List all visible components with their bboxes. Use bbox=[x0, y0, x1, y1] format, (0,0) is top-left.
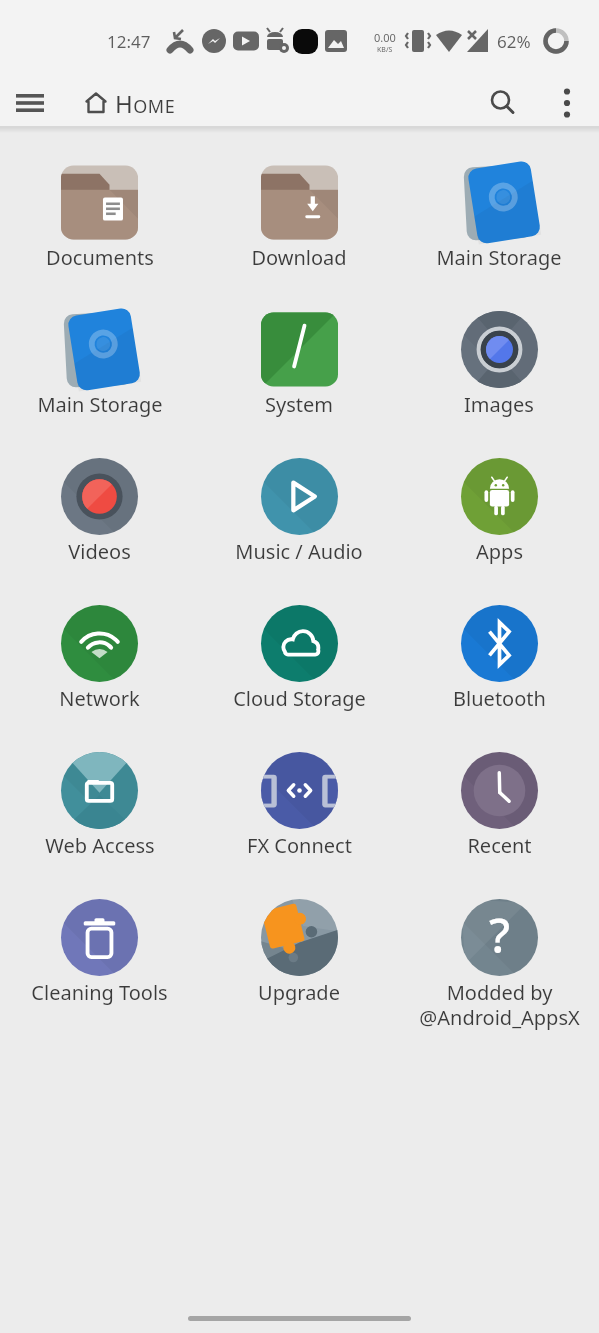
staticText: 0.00 bbox=[374, 30, 396, 45]
staticText: Music / Audio bbox=[235, 538, 363, 565]
staticText: Cleaning Tools bbox=[31, 979, 168, 1006]
staticText: Web Access bbox=[45, 832, 155, 859]
button[interactable]: Music / Audio bbox=[199, 458, 399, 565]
staticText: ? bbox=[489, 903, 511, 967]
staticText: KB/S bbox=[377, 45, 393, 55]
button[interactable] bbox=[548, 82, 586, 124]
button[interactable]: Recent bbox=[399, 752, 599, 859]
button[interactable]: Upgrade bbox=[199, 899, 399, 1006]
staticText: Bluetooth bbox=[453, 685, 546, 712]
button[interactable]: Images bbox=[399, 311, 599, 418]
staticText: Recent bbox=[467, 832, 532, 859]
button[interactable]: FX Connect bbox=[199, 752, 399, 859]
button[interactable]: Apps bbox=[399, 458, 599, 565]
staticText: Videos bbox=[68, 538, 131, 565]
button[interactable]: Web Access bbox=[0, 752, 199, 859]
button[interactable]: Main Storage bbox=[0, 311, 199, 418]
staticText: Download bbox=[251, 244, 347, 271]
button[interactable]: Bluetooth bbox=[399, 605, 599, 712]
staticText: Main Storage bbox=[37, 391, 163, 418]
button[interactable]: HOME bbox=[84, 80, 176, 126]
staticText: HOME bbox=[115, 87, 176, 120]
staticText: Cloud Storage bbox=[233, 685, 366, 712]
button[interactable]: Videos bbox=[0, 458, 199, 565]
staticText: Modded by @Android_AppsX bbox=[419, 979, 580, 1031]
button[interactable]: Network bbox=[0, 605, 199, 712]
staticText: Documents bbox=[46, 244, 154, 271]
staticText: Upgrade bbox=[258, 979, 340, 1006]
button[interactable]: Main Storage bbox=[399, 164, 599, 271]
staticText: Apps bbox=[476, 538, 523, 565]
staticText: 12:47 bbox=[107, 30, 151, 53]
button[interactable] bbox=[8, 82, 52, 124]
staticText: FX Connect bbox=[247, 832, 352, 859]
staticText: System bbox=[265, 391, 333, 418]
staticText: Network bbox=[59, 685, 140, 712]
staticText: Main Storage bbox=[436, 244, 562, 271]
button[interactable] bbox=[482, 82, 524, 124]
button[interactable]: Cleaning Tools bbox=[0, 899, 199, 1006]
staticText: 62% bbox=[497, 30, 531, 53]
button[interactable]: System bbox=[199, 311, 399, 418]
staticText: Images bbox=[464, 391, 534, 418]
button[interactable]: Documents bbox=[0, 164, 199, 271]
button[interactable]: Download bbox=[199, 164, 399, 271]
button[interactable]: Cloud Storage bbox=[199, 605, 399, 712]
button[interactable]: ? bbox=[399, 899, 599, 1031]
